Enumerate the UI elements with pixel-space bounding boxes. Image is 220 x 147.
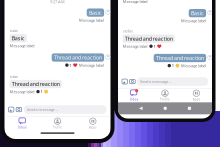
button[interactable]: Inbox xyxy=(4,118,40,129)
staticText: Basic xyxy=(191,10,204,17)
button[interactable]: Photos xyxy=(8,107,14,112)
staticText: stefan xyxy=(122,28,132,34)
staticText: Basic xyxy=(12,35,25,42)
button[interactable]: Recents xyxy=(188,107,191,110)
staticText: Thread and reaction xyxy=(125,35,173,42)
staticText: kuba xyxy=(9,28,17,33)
staticText: Message label xyxy=(122,44,147,49)
button[interactable]: Send a message ... xyxy=(24,105,106,114)
staticText: Profile xyxy=(160,98,170,101)
staticText: Inbox xyxy=(18,126,26,129)
staticText: Thread and reaction xyxy=(54,54,102,61)
staticText: 1 xyxy=(69,62,71,68)
staticText: 1 xyxy=(172,63,174,68)
button[interactable]: Apps xyxy=(75,118,110,129)
button[interactable]: Inbox xyxy=(118,90,149,101)
staticText: Profile xyxy=(52,126,62,129)
button[interactable]: Photos xyxy=(122,79,127,84)
button[interactable]: Profile xyxy=(149,90,181,101)
staticText: Message label xyxy=(122,0,147,4)
button[interactable]: Profile xyxy=(40,118,75,129)
button[interactable]: Apps xyxy=(181,90,212,101)
button[interactable]: Back xyxy=(139,106,142,110)
staticText: Message label xyxy=(181,63,206,68)
staticText: Thread and reaction xyxy=(12,80,60,88)
staticText: kuba xyxy=(9,74,17,79)
staticText: Thread and reaction xyxy=(156,54,204,62)
staticText: Message label xyxy=(9,43,34,48)
button[interactable]: Home xyxy=(163,107,167,110)
staticText: Message label xyxy=(79,18,104,23)
staticText: Apps xyxy=(89,126,96,129)
staticText: Apps xyxy=(193,98,200,101)
button[interactable]: Camera xyxy=(130,79,135,84)
staticText: Message label xyxy=(9,89,34,94)
staticText: Basic xyxy=(89,9,102,16)
staticText: 9:27 AM xyxy=(50,0,65,4)
staticText: 1 xyxy=(40,89,42,94)
staticText: Message label xyxy=(181,18,206,23)
staticText: 1 xyxy=(153,44,155,49)
button[interactable]: Send a message ... xyxy=(137,77,208,86)
staticText: Message label xyxy=(79,62,104,68)
staticText: Inbox xyxy=(130,98,138,101)
button[interactable]: Camera xyxy=(16,107,22,112)
staticText: Send a message ... xyxy=(140,79,172,84)
staticText: Send a message ... xyxy=(26,107,58,112)
